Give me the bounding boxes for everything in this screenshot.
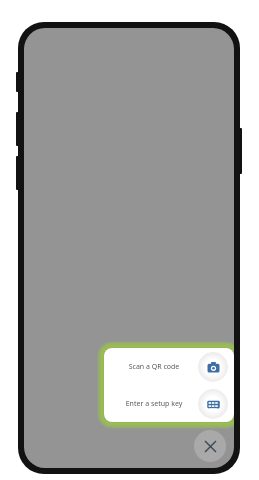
button[interactable]: Close: [194, 430, 226, 462]
staticText: Enter a setup key: [110, 399, 198, 409]
other: Scan a QR code: [207, 361, 220, 374]
button[interactable]: Enter a setup key: [104, 385, 234, 422]
button[interactable]: Scan a QR code: [104, 348, 234, 385]
staticText: Scan a QR code: [110, 362, 198, 372]
other: Enter a setup key: [207, 398, 220, 411]
